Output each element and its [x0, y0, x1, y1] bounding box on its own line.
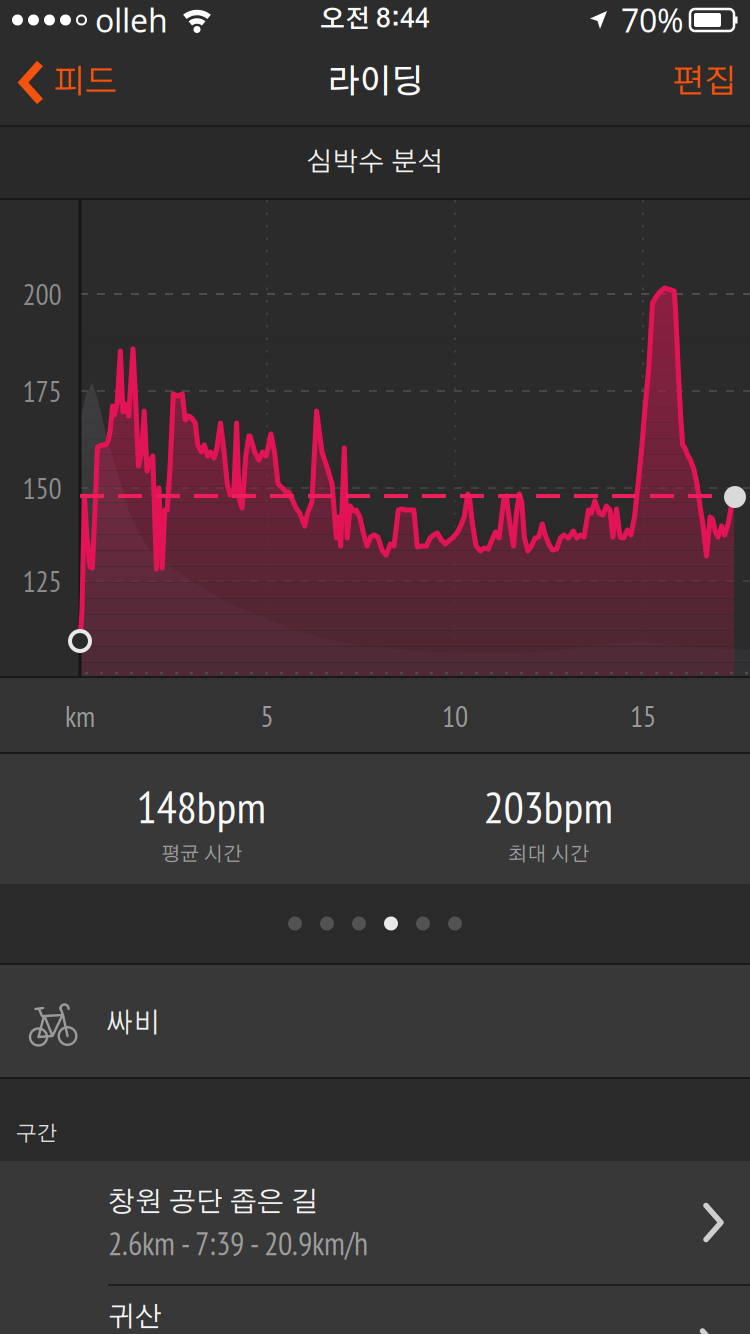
staticText: 라이딩 [327, 66, 423, 99]
staticText: 편집 [672, 66, 736, 99]
staticText: 창원 공단 좁은 길 [108, 1189, 318, 1217]
button[interactable]: 피드 [0, 60, 117, 104]
staticText: 10 [442, 697, 468, 735]
staticText: 203bpm [483, 777, 613, 836]
staticText: 150 [22, 469, 61, 507]
staticText: 싸비 [106, 1010, 160, 1038]
staticText: 2.6km - 7:39 - 20.9km/h [108, 1223, 368, 1264]
staticText: 오전 8:44 [320, 7, 430, 33]
staticText: 70% [621, 0, 684, 41]
staticText: 15 [630, 697, 656, 735]
staticText: 최대 시간 [508, 845, 589, 865]
staticText: 148bpm [136, 777, 266, 836]
staticText: 피드 [53, 66, 117, 99]
staticText: 귀산 [108, 1304, 162, 1332]
staticText: 평균 시간 [161, 845, 242, 865]
staticText: olleh [95, 0, 168, 41]
staticText: 125 [22, 562, 61, 600]
staticText: 구간 [16, 1124, 58, 1145]
staticText: 200 [22, 275, 61, 313]
staticText: 175 [22, 372, 61, 410]
button[interactable]: 편집 [672, 66, 750, 99]
button[interactable]: 싸비 [0, 965, 750, 1077]
staticText: km [65, 697, 95, 735]
button[interactable]: 창원 공단 좁은 길 [0, 1161, 750, 1284]
staticText: 5 [260, 697, 273, 735]
button[interactable]: 귀산 [0, 1286, 750, 1334]
staticText: 심박수 분석 [306, 149, 443, 176]
